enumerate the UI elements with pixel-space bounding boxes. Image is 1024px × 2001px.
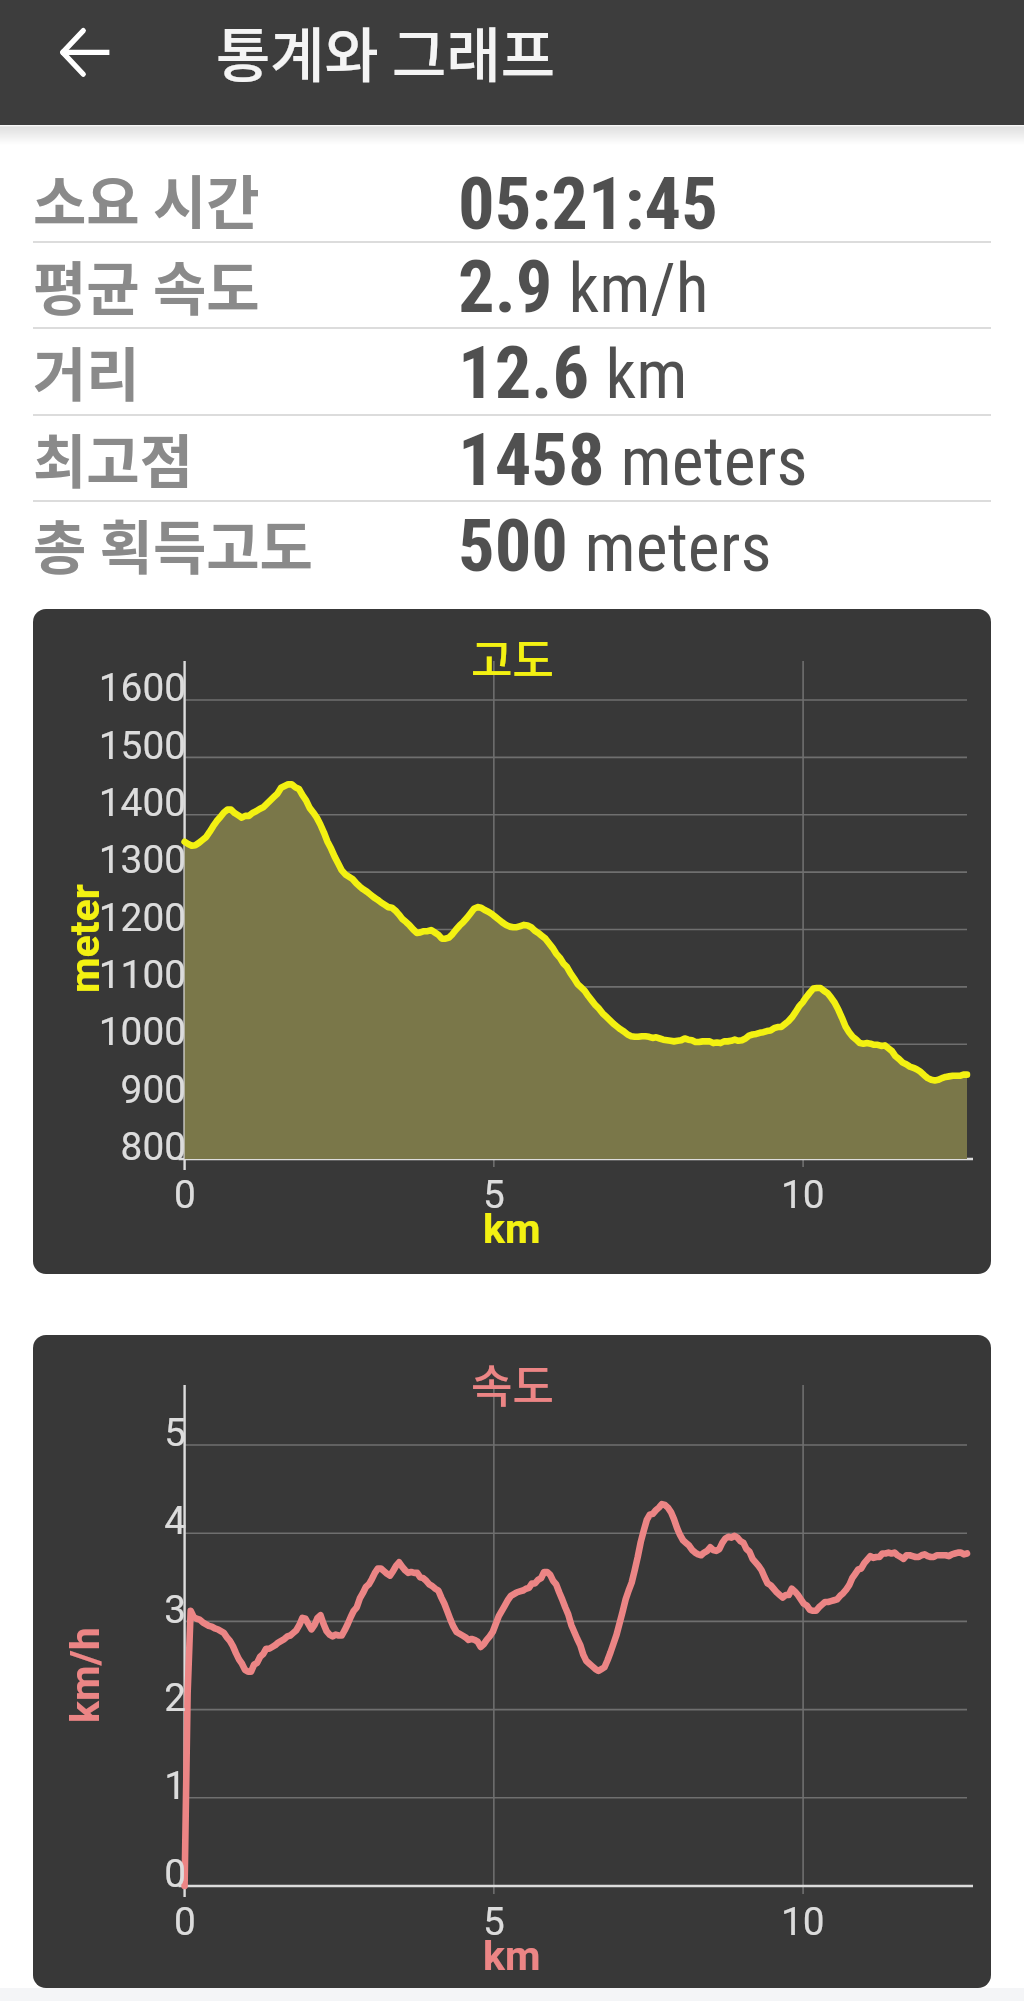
staticText: 1400 <box>98 780 186 825</box>
button[interactable]: 거리 <box>0 328 1024 414</box>
button[interactable]: 평균 속도 <box>0 242 1024 328</box>
staticText: 평균 속도 <box>33 243 260 327</box>
staticText: 통계와 그래프 <box>216 9 555 94</box>
button[interactable]: 소요 시간 <box>0 125 1024 242</box>
staticText: 05:21:45 <box>458 162 718 247</box>
staticText: 3 <box>164 1587 186 1632</box>
button[interactable]: 총 획득고도 <box>0 501 1024 587</box>
staticText: 1300 <box>98 837 186 882</box>
staticText: km <box>483 1205 541 1253</box>
staticText: 2 <box>164 1675 186 1720</box>
staticText: 10 <box>781 1899 825 1944</box>
staticText: 5 <box>483 1172 505 1217</box>
staticText: 1 <box>164 1763 186 1808</box>
staticText: meters <box>569 508 772 588</box>
staticText: 0 <box>164 1851 186 1896</box>
button[interactable]: Back <box>36 4 132 100</box>
staticText: 최고점 <box>33 416 194 500</box>
staticText: 1458 <box>458 418 605 503</box>
staticText: 5 <box>164 1410 186 1455</box>
staticText: 1100 <box>98 952 186 997</box>
staticText: 12.6 <box>458 331 590 416</box>
staticText: 1600 <box>98 665 186 710</box>
staticText: 0 <box>174 1172 196 1217</box>
staticText: 2.9 <box>458 245 553 330</box>
button[interactable]: 5 <box>33 1335 991 1988</box>
staticText: 800 <box>120 1124 186 1169</box>
staticText: 0 <box>174 1899 196 1944</box>
staticText: 900 <box>120 1067 186 1112</box>
staticText: 거리 <box>33 329 140 413</box>
staticText: 소요 시간 <box>33 157 260 241</box>
staticText: km <box>590 335 688 415</box>
staticText: 4 <box>164 1498 186 1543</box>
staticText: 1000 <box>98 1009 186 1054</box>
staticText: 1500 <box>98 723 186 768</box>
staticText: km <box>483 1932 541 1980</box>
staticText: 고도 <box>471 625 554 690</box>
button[interactable]: 1600 <box>33 609 991 1274</box>
button[interactable]: 최고점 <box>0 415 1024 501</box>
staticText: km/h <box>553 249 709 329</box>
staticText: 10 <box>781 1172 825 1217</box>
staticText: 500 <box>458 504 569 589</box>
staticText: 총 획득고도 <box>33 502 313 586</box>
staticText: meter <box>61 884 109 993</box>
staticText: 1200 <box>98 895 186 940</box>
staticText: meters <box>605 422 808 502</box>
staticText: 5 <box>483 1899 505 1944</box>
staticText: km/h <box>61 1627 109 1723</box>
staticText: 속도 <box>471 1351 554 1416</box>
